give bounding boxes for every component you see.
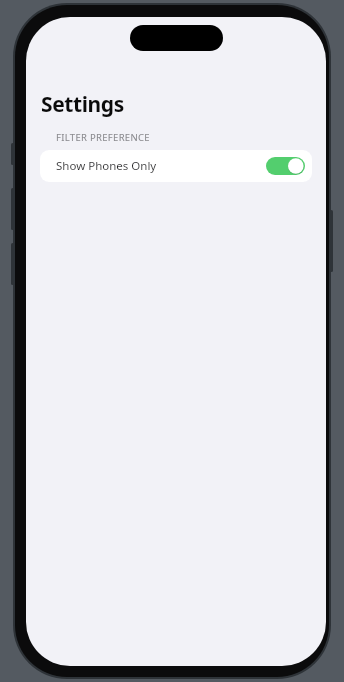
staticText: Show Phones Only (56, 158, 157, 174)
button[interactable]: Show Phones Only (40, 150, 312, 182)
button[interactable]: Show Phones Only toggle (266, 157, 305, 175)
staticText: FILTER PREFERENCE (56, 131, 150, 144)
staticText: Settings (41, 90, 124, 119)
